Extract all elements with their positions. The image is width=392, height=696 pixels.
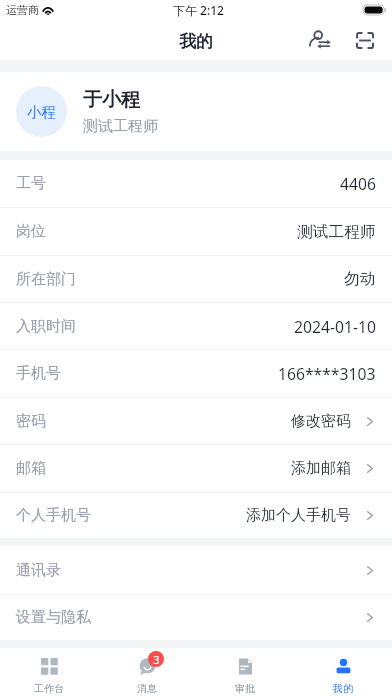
staticText: 密码 [16,412,46,431]
staticText: 个人手机号 [16,506,91,525]
staticText: 邮箱 [16,459,46,478]
staticText: 运营商 [6,3,39,17]
staticText: 工号 [16,174,46,193]
staticText: 添加个人手机号 [246,506,351,525]
staticText: 166****3103 [278,363,376,384]
button[interactable]: 工作台 [0,648,98,696]
staticText: 4406 [340,173,376,194]
staticText: 入职时间 [16,317,76,336]
button[interactable]: 入职时间 [0,303,392,349]
staticText: 小程 [27,103,56,121]
staticText: 添加邮箱 [291,459,351,478]
button[interactable]: 个人手机号 [0,493,392,538]
staticText: 所在部门 [16,270,76,289]
button[interactable]: 我的 [294,648,392,696]
button[interactable]: 密码 [0,398,392,444]
staticText: 下午 2:12 [173,2,224,18]
staticText: 岗位 [16,222,46,241]
staticText: 测试工程师 [83,117,158,136]
staticText: 于小程 [83,88,140,112]
staticText: 通讯录 [16,561,61,580]
staticText: 手机号 [16,364,61,383]
staticText: 消息 [137,682,157,695]
button[interactable]: 3 [98,648,196,696]
staticText: 测试工程师 [297,222,376,242]
staticText: 设置与隐私 [16,608,91,627]
button[interactable]: 岗位 [0,208,392,255]
button[interactable]: 通讯录 [0,546,392,594]
button[interactable]: 手机号 [0,350,392,397]
button[interactable]: 切换账号 [300,20,340,60]
staticText: 审批 [235,682,255,695]
staticText: 我的 [333,682,353,695]
button[interactable]: 所在部门 [0,256,392,302]
staticText: 工作台 [34,682,64,695]
button[interactable]: 审批 [196,648,294,696]
staticText: 3 [153,652,160,667]
staticText: 勿动 [344,269,376,289]
staticText: 修改密码 [291,412,351,431]
staticText: 我的 [179,31,213,52]
staticText: 2024-01-10 [294,316,376,337]
button[interactable]: 设置与隐私 [0,595,392,640]
button[interactable]: 扫一扫 [345,20,385,60]
button[interactable]: 邮箱 [0,445,392,492]
button[interactable]: 小程 [0,72,392,151]
button[interactable]: 工号 [0,160,392,207]
